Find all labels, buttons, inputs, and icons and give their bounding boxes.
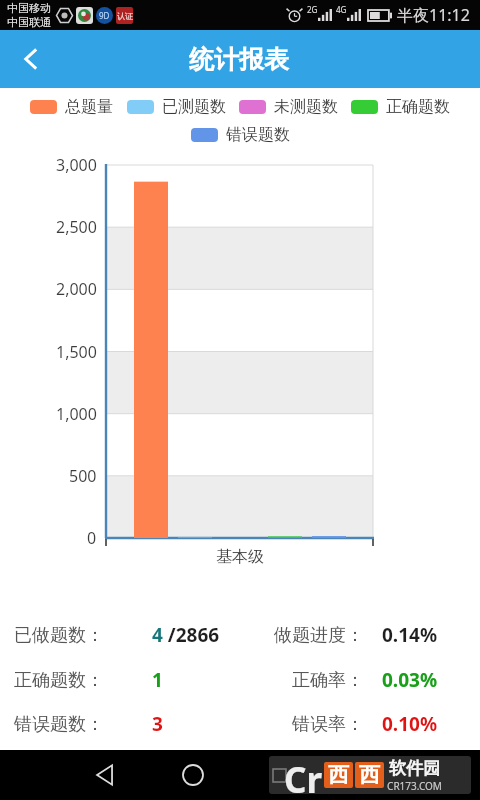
staticText: 3,000 xyxy=(56,154,97,176)
staticText: 正确题数： xyxy=(14,669,104,692)
staticText: 中国移动 xyxy=(7,1,51,15)
staticText: 已做题数： xyxy=(14,624,104,647)
staticText: 9D xyxy=(99,10,110,21)
button[interactable]: Recents xyxy=(261,752,307,798)
staticText: 基本级 xyxy=(216,547,264,567)
staticText: 错误率： xyxy=(292,713,364,736)
staticText: 2,000 xyxy=(56,278,97,300)
staticText: 1 xyxy=(152,667,163,693)
staticText: 正确题数 xyxy=(386,97,450,117)
staticText: 错误题数 xyxy=(226,125,290,145)
staticText: 中国联通 xyxy=(7,15,51,29)
button[interactable]: Back xyxy=(5,33,57,85)
staticText: 做题进度： xyxy=(274,624,364,647)
button[interactable]: Back xyxy=(82,752,128,798)
staticText: 西 xyxy=(359,762,380,788)
staticText: 4G xyxy=(336,4,347,15)
button[interactable]: Home xyxy=(170,752,216,798)
staticText: 1,000 xyxy=(56,403,97,425)
staticText: 西 xyxy=(328,762,349,788)
staticText: Cr xyxy=(284,756,323,794)
staticText: 未测题数 xyxy=(274,97,338,117)
staticText: CR173.COM xyxy=(387,779,442,793)
staticText: 已测题数 xyxy=(162,97,226,117)
staticText: 2G xyxy=(307,4,318,15)
staticText: 1,500 xyxy=(56,341,97,363)
staticText: 3 xyxy=(152,711,163,737)
staticText: 半夜11:12 xyxy=(397,4,470,26)
staticText: 统计报表 xyxy=(189,44,289,75)
staticText: 0.14% xyxy=(382,622,438,648)
staticText: 0.10% xyxy=(382,711,438,737)
staticText: 500 xyxy=(69,465,97,487)
staticText: 错误题数： xyxy=(14,713,104,736)
staticText: 0 xyxy=(87,527,97,549)
staticText: 总题量 xyxy=(65,97,113,117)
staticText: 2,500 xyxy=(56,216,97,238)
staticText: 0.03% xyxy=(382,667,438,693)
staticText: 认证 xyxy=(117,11,133,21)
staticText: 4 /2866 xyxy=(152,622,220,648)
staticText: 正确率： xyxy=(292,669,364,692)
staticText: 软件园 xyxy=(389,758,440,779)
